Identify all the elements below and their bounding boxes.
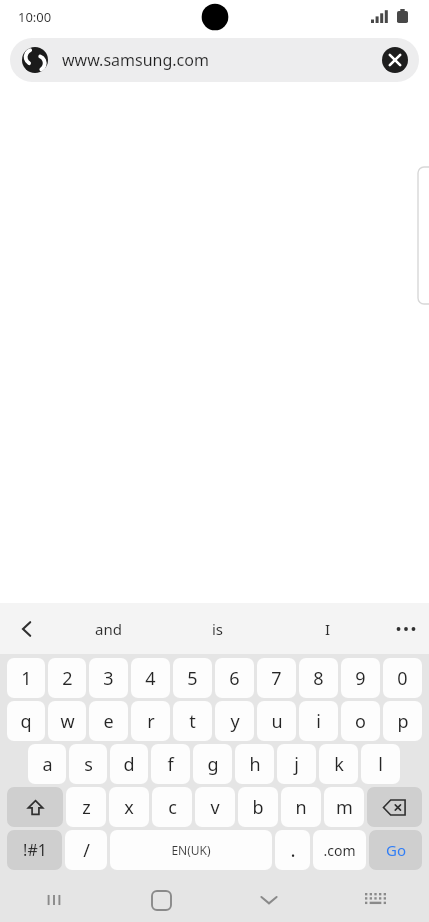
staticText: I bbox=[325, 619, 331, 639]
button[interactable]: f bbox=[151, 744, 190, 784]
button[interactable]: Home bbox=[108, 878, 215, 922]
button[interactable]: d bbox=[110, 744, 148, 784]
staticText: 4 bbox=[145, 666, 156, 691]
button[interactable]: 1 bbox=[7, 658, 45, 698]
button[interactable]: 7 bbox=[257, 658, 296, 698]
button[interactable]: 4 bbox=[131, 658, 170, 698]
button[interactable]: 2 bbox=[48, 658, 86, 698]
staticText: d bbox=[123, 752, 135, 777]
button[interactable]: a bbox=[28, 744, 66, 784]
staticText: www.samsung.com bbox=[62, 49, 209, 71]
button[interactable]: Recents bbox=[0, 878, 108, 922]
staticText: y bbox=[230, 709, 240, 734]
button[interactable]: More options bbox=[383, 603, 429, 654]
button[interactable]: i bbox=[299, 701, 338, 741]
button[interactable]: I bbox=[273, 603, 383, 654]
staticText: and bbox=[95, 619, 122, 639]
button[interactable]: p bbox=[383, 701, 422, 741]
staticText: 7 bbox=[271, 666, 282, 691]
staticText: g bbox=[207, 752, 219, 777]
staticText: k bbox=[334, 752, 344, 777]
button[interactable]: .com bbox=[313, 830, 366, 870]
button[interactable]: z bbox=[66, 787, 106, 827]
button[interactable]: / bbox=[65, 830, 107, 870]
button[interactable]: m bbox=[324, 787, 364, 827]
button[interactable]: x bbox=[109, 787, 149, 827]
staticText: z bbox=[82, 795, 91, 820]
button[interactable]: r bbox=[131, 701, 170, 741]
staticText: 2 bbox=[62, 666, 73, 691]
staticText: w bbox=[60, 709, 75, 734]
staticText: i bbox=[316, 709, 321, 734]
button[interactable]: b bbox=[238, 787, 278, 827]
staticText: Go bbox=[386, 840, 406, 860]
button[interactable]: w bbox=[48, 701, 86, 741]
button[interactable]: Go bbox=[369, 830, 422, 870]
button[interactable]: . bbox=[275, 830, 310, 870]
staticText: r bbox=[147, 709, 155, 734]
button[interactable]: q bbox=[7, 701, 45, 741]
button[interactable]: Previous bbox=[0, 603, 54, 654]
button[interactable]: EN(UK) bbox=[110, 830, 272, 870]
staticText: 0 bbox=[397, 666, 408, 691]
staticText: .com bbox=[323, 841, 356, 860]
staticText: t bbox=[189, 709, 196, 734]
button[interactable]: o bbox=[341, 701, 380, 741]
button[interactable]: Hide keyboard bbox=[215, 878, 322, 922]
button[interactable]: j bbox=[277, 744, 316, 784]
button[interactable]: h bbox=[235, 744, 274, 784]
staticText: . bbox=[290, 837, 296, 863]
button[interactable]: k bbox=[319, 744, 358, 784]
button[interactable]: g bbox=[193, 744, 232, 784]
button[interactable]: Clear bbox=[382, 47, 408, 73]
button[interactable]: Shift bbox=[7, 787, 63, 827]
staticText: 8 bbox=[313, 666, 324, 691]
button[interactable]: v bbox=[195, 787, 235, 827]
staticText: h bbox=[249, 752, 261, 777]
staticText: x bbox=[124, 795, 134, 820]
button[interactable]: 3 bbox=[89, 658, 128, 698]
button[interactable]: !#1 bbox=[7, 830, 62, 870]
staticText: n bbox=[295, 795, 307, 820]
staticText: 5 bbox=[187, 666, 198, 691]
staticText: a bbox=[42, 752, 53, 777]
button[interactable]: 5 bbox=[173, 658, 212, 698]
button[interactable]: 9 bbox=[341, 658, 380, 698]
staticText: 1 bbox=[21, 666, 32, 691]
staticText: e bbox=[103, 709, 114, 734]
button[interactable]: u bbox=[257, 701, 296, 741]
button[interactable]: www.samsung.com bbox=[10, 38, 419, 82]
staticText: 3 bbox=[103, 666, 114, 691]
staticText: o bbox=[355, 709, 366, 734]
staticText: EN(UK) bbox=[171, 842, 211, 858]
staticText: is bbox=[212, 619, 224, 639]
staticText: q bbox=[20, 709, 32, 734]
button[interactable]: 8 bbox=[299, 658, 338, 698]
button[interactable]: Change keyboard bbox=[322, 878, 429, 922]
staticText: j bbox=[294, 752, 299, 777]
button[interactable]: l bbox=[361, 744, 400, 784]
button[interactable]: is bbox=[163, 603, 273, 654]
button[interactable]: Backspace bbox=[367, 787, 422, 827]
staticText: u bbox=[271, 709, 283, 734]
staticText: v bbox=[210, 795, 220, 820]
button[interactable]: and bbox=[54, 603, 163, 654]
staticText: s bbox=[84, 752, 93, 777]
button[interactable]: c bbox=[152, 787, 192, 827]
staticText: 6 bbox=[229, 666, 240, 691]
button[interactable]: y bbox=[215, 701, 254, 741]
staticText: b bbox=[252, 795, 264, 820]
staticText: l bbox=[378, 752, 383, 777]
button[interactable]: 6 bbox=[215, 658, 254, 698]
button[interactable]: n bbox=[281, 787, 321, 827]
staticText: !#1 bbox=[23, 839, 47, 861]
button[interactable]: s bbox=[69, 744, 107, 784]
staticText: c bbox=[168, 795, 177, 820]
button[interactable]: e bbox=[89, 701, 128, 741]
staticText: 9 bbox=[355, 666, 366, 691]
staticText: m bbox=[336, 795, 353, 820]
button[interactable]: t bbox=[173, 701, 212, 741]
staticText: p bbox=[397, 709, 409, 734]
button[interactable]: 0 bbox=[383, 658, 422, 698]
staticText: / bbox=[83, 838, 90, 863]
